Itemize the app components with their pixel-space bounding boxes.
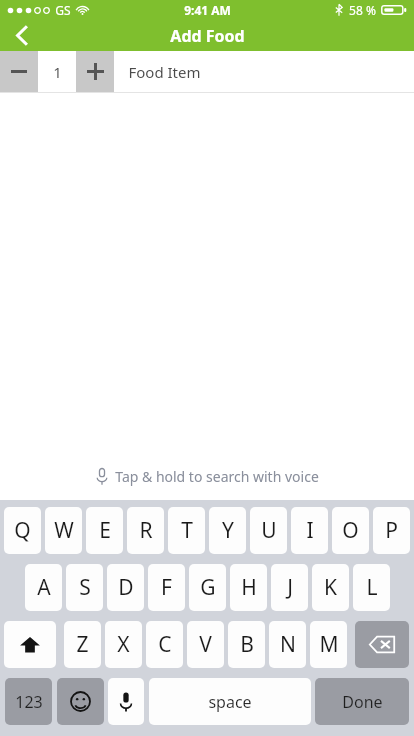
- button[interactable]: D: [107, 564, 144, 611]
- button[interactable]: G: [189, 564, 226, 611]
- button[interactable]: Tap & hold to search with voice: [96, 467, 319, 486]
- staticText: G: [200, 573, 216, 602]
- button[interactable]: U: [250, 507, 287, 554]
- staticText: Done: [342, 691, 383, 713]
- button[interactable]: Emoji: [57, 678, 104, 725]
- staticText: 1: [53, 62, 62, 82]
- staticText: X: [117, 630, 130, 659]
- button[interactable]: H: [230, 564, 267, 611]
- button[interactable]: Back: [0, 20, 44, 51]
- button[interactable]: M: [310, 621, 347, 668]
- staticText: R: [139, 516, 153, 545]
- button[interactable]: B: [228, 621, 265, 668]
- button[interactable]: Backspace: [355, 621, 409, 668]
- staticText: E: [99, 516, 111, 545]
- staticText: M: [319, 630, 339, 659]
- staticText: Tap & hold to search with voice: [115, 467, 319, 486]
- staticText: T: [181, 516, 193, 545]
- button[interactable]: T: [168, 507, 205, 554]
- button[interactable]: Food Item: [114, 51, 414, 92]
- staticText: J: [287, 573, 293, 602]
- button[interactable]: Increase quantity: [76, 51, 114, 92]
- button[interactable]: L: [353, 564, 390, 611]
- staticText: P: [385, 516, 398, 545]
- staticText: V: [199, 630, 212, 659]
- staticText: F: [161, 573, 172, 602]
- staticText: 9:41 AM: [184, 2, 231, 18]
- staticText: Z: [76, 630, 89, 659]
- button[interactable]: Y: [209, 507, 246, 554]
- button[interactable]: space: [149, 678, 311, 725]
- button[interactable]: A: [25, 564, 62, 611]
- button[interactable]: Voice input: [108, 678, 144, 725]
- button[interactable]: W: [45, 507, 82, 554]
- button[interactable]: I: [291, 507, 328, 554]
- staticText: L: [366, 573, 378, 602]
- button[interactable]: Shift: [4, 621, 56, 668]
- staticText: Add Food: [170, 25, 245, 47]
- staticText: 58 %: [349, 2, 376, 18]
- staticText: Y: [222, 516, 234, 545]
- button[interactable]: K: [312, 564, 349, 611]
- button[interactable]: V: [187, 621, 224, 668]
- button[interactable]: Q: [4, 507, 41, 554]
- button[interactable]: Decrease quantity: [0, 51, 38, 92]
- button[interactable]: R: [127, 507, 164, 554]
- button[interactable]: E: [86, 507, 123, 554]
- button[interactable]: X: [105, 621, 142, 668]
- staticText: B: [240, 630, 254, 659]
- button[interactable]: O: [332, 507, 369, 554]
- staticText: O: [342, 516, 359, 545]
- staticText: GS: [55, 2, 71, 18]
- staticText: K: [324, 573, 337, 602]
- button[interactable]: N: [269, 621, 306, 668]
- staticText: D: [118, 573, 134, 602]
- staticText: H: [241, 573, 257, 602]
- staticText: I: [306, 516, 314, 545]
- staticText: Food Item: [128, 62, 201, 82]
- button[interactable]: S: [66, 564, 103, 611]
- button[interactable]: F: [148, 564, 185, 611]
- staticText: C: [158, 630, 172, 659]
- button[interactable]: Z: [64, 621, 101, 668]
- staticText: Q: [14, 516, 31, 545]
- button[interactable]: P: [373, 507, 410, 554]
- staticText: 123: [15, 691, 43, 713]
- staticText: space: [208, 691, 252, 713]
- button[interactable]: J: [271, 564, 308, 611]
- staticText: W: [54, 516, 74, 545]
- staticText: U: [261, 516, 277, 545]
- staticText: S: [79, 573, 91, 602]
- button[interactable]: 123: [5, 678, 52, 725]
- button[interactable]: C: [146, 621, 183, 668]
- staticText: A: [37, 573, 51, 602]
- staticText: N: [280, 630, 296, 659]
- button[interactable]: Done: [315, 678, 409, 725]
